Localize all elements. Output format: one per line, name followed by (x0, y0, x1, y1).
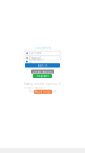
staticText: Password (29, 56, 41, 60)
button[interactable]: Password (25, 56, 60, 60)
button[interactable]: Username (25, 51, 60, 55)
staticText: Create account (32, 70, 52, 73)
staticText: Username (29, 51, 42, 55)
staticText: cloudmed (35, 46, 51, 50)
staticText: Remember me (29, 58, 44, 65)
staticText: Reset your password (28, 90, 56, 93)
staticText: Need help? (34, 90, 51, 93)
button[interactable]: Need help? (34, 90, 52, 94)
staticText: Register (36, 74, 48, 78)
staticText: Sign in (37, 64, 47, 67)
staticText: Having trouble signing in to your accoun… (24, 82, 61, 89)
button[interactable]: Sign in (25, 63, 60, 67)
button[interactable]: Create account (31, 70, 54, 74)
button[interactable]: Register (33, 74, 52, 78)
button[interactable]: Remember me (26, 60, 46, 63)
